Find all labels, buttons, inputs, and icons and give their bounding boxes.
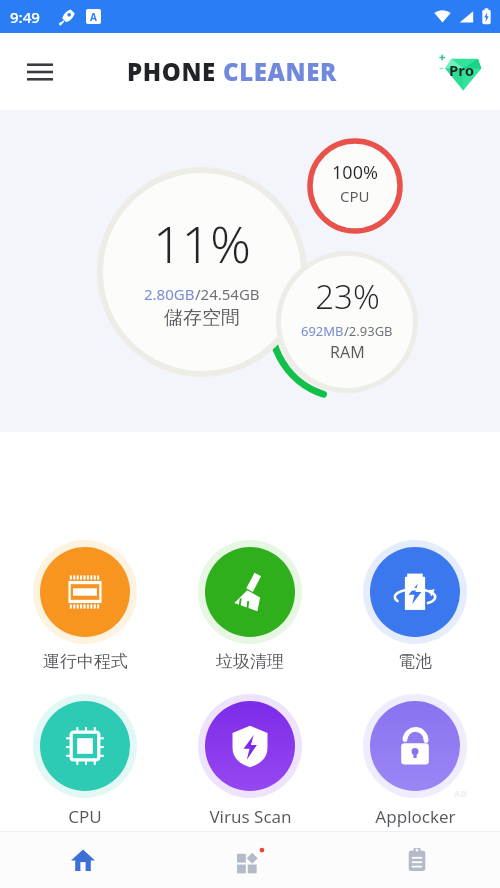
- staticText: AD: [454, 787, 467, 799]
- button[interactable]: Home: [0, 832, 166, 888]
- staticText: 11%: [153, 210, 251, 278]
- staticText: /2.93GB: [344, 322, 393, 340]
- staticText: 100%: [332, 160, 378, 185]
- button[interactable]: CPU: [5, 694, 165, 828]
- staticText: CPU: [68, 805, 102, 828]
- button[interactable]: Upgrade to Pro: [434, 44, 490, 100]
- staticText: Applocker: [375, 805, 456, 828]
- button[interactable]: 電池: [335, 540, 495, 672]
- staticText: Pro: [449, 60, 475, 80]
- button[interactable]: 垃圾清理: [170, 540, 330, 672]
- staticText: 儲存空間: [164, 306, 240, 330]
- button[interactable]: Tools: [166, 832, 333, 888]
- button[interactable]: 運行中程式: [5, 540, 165, 672]
- staticText: RAM: [330, 341, 365, 363]
- staticText: CLEANER: [223, 55, 337, 88]
- staticText: Virus Scan: [209, 805, 292, 828]
- staticText: CPU: [340, 186, 370, 206]
- staticText: 電池: [398, 651, 432, 672]
- button[interactable]: AD: [335, 694, 495, 828]
- button[interactable]: Reports: [333, 832, 500, 888]
- staticText: 692MB: [301, 322, 344, 340]
- staticText: 23%: [315, 274, 380, 319]
- staticText: 2.80GB: [144, 284, 195, 304]
- button[interactable]: Virus Scan: [170, 694, 330, 828]
- staticText: /24.54GB: [195, 284, 260, 304]
- staticText: A: [90, 10, 97, 24]
- staticText: 垃圾清理: [216, 651, 284, 672]
- staticText: 9:49: [10, 7, 40, 27]
- button[interactable]: Menu: [18, 50, 62, 94]
- staticText: 運行中程式: [43, 651, 128, 672]
- staticText: PHONE: [127, 55, 223, 88]
